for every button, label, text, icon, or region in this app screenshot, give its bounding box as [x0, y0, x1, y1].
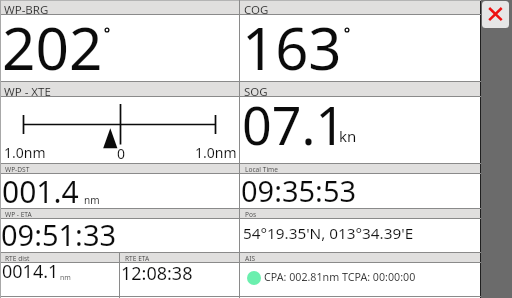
staticText: 12:08:38 [121, 261, 193, 286]
staticText: COG [244, 2, 269, 18]
button[interactable]: SOG 07.1 knots [240, 82, 480, 163]
button[interactable]: Close [482, 1, 509, 28]
staticText: kn [339, 126, 357, 146]
staticText: WP-DST [5, 165, 30, 174]
staticText: 202 [2, 7, 103, 87]
staticText: 1.0nm [4, 143, 46, 162]
button[interactable]: AIS CPA 002.81nm TCPA 00:00:00 [240, 253, 480, 297]
staticText: 07.1 [242, 89, 346, 160]
staticText: 163 [242, 8, 342, 87]
staticText: nm [60, 273, 71, 283]
button[interactable]: Position 54 19.35 N, 013 34.39 E [240, 209, 480, 252]
staticText: 001.4 [2, 171, 79, 212]
staticText: 0 [117, 144, 126, 163]
staticText: CPA: 002.81nm TCPA: 00:00:00 [264, 270, 416, 285]
staticText: WP - XTE [4, 84, 51, 100]
staticText: SOG [244, 84, 268, 100]
button[interactable]: RTE dist 0014.1 nm [0, 253, 119, 297]
staticText: RTE dist [5, 254, 30, 263]
button[interactable]: RTE ETA 12:08:38 [120, 253, 239, 297]
staticText: 09:51:33 [1, 215, 117, 254]
button[interactable]: WP ETA 09:51:33 [0, 209, 239, 252]
staticText: 1.0nm [195, 143, 237, 162]
staticText: RTE ETA [125, 254, 150, 263]
staticText: WP - ETA [5, 210, 32, 219]
button[interactable]: Local Time 09:35:53 [240, 164, 480, 208]
staticText: 0014.1 [2, 259, 59, 284]
button[interactable]: WP cross track error [0, 82, 239, 163]
staticText: nm [84, 193, 100, 207]
button[interactable]: WP-BRG 202 degrees [0, 0, 239, 81]
staticText: 54°19.35'N, 013°34.39'E [243, 223, 414, 244]
button[interactable]: WP-DST 001.4 nm [0, 164, 239, 208]
staticText: AIS [245, 254, 256, 263]
staticText: Local Time [245, 165, 278, 174]
staticText: Pos [245, 210, 257, 219]
button[interactable]: COG 163 degrees [240, 0, 480, 81]
staticText: WP-BRG [4, 2, 49, 18]
staticText: 09:35:53 [241, 171, 357, 210]
